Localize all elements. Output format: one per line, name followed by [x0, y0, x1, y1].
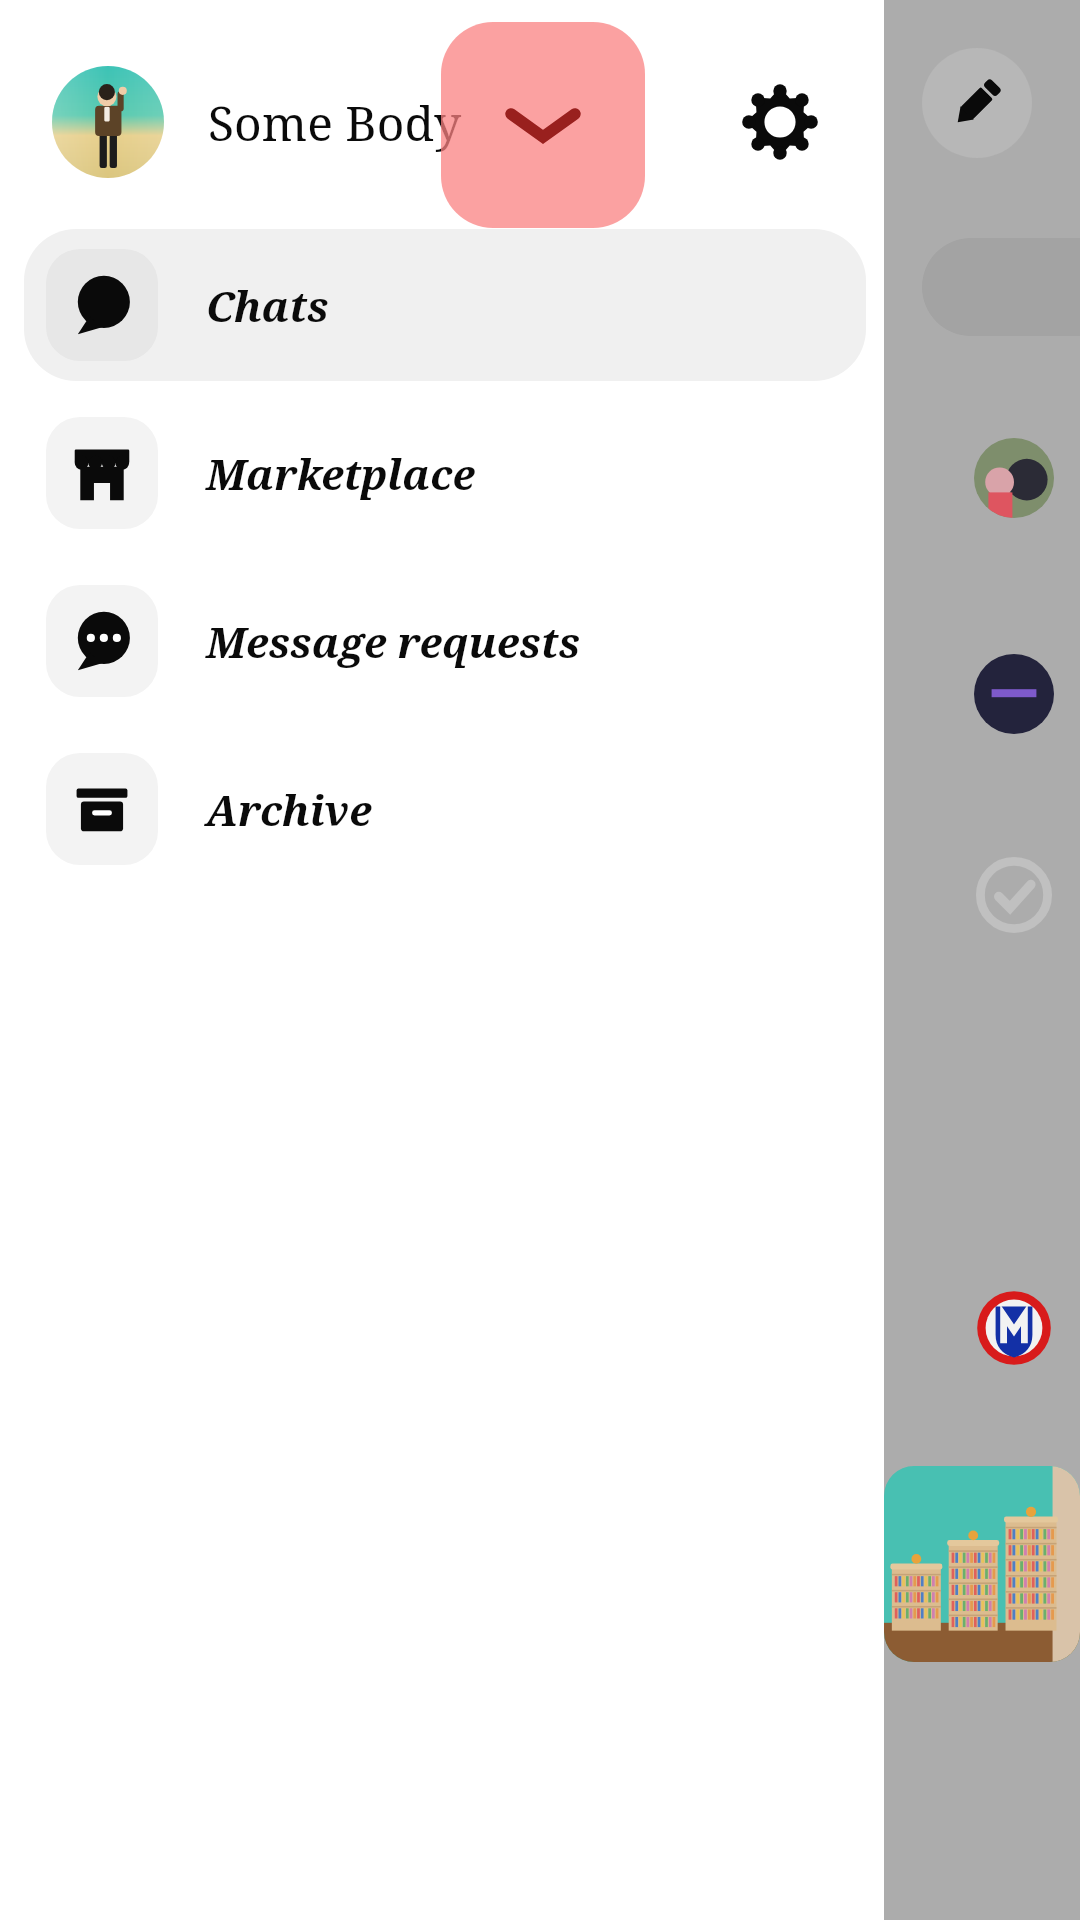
button[interactable]: Conversation avatar [974, 654, 1054, 734]
button[interactable]: Expand account switcher [441, 22, 645, 228]
staticText: Some Body [208, 90, 462, 155]
staticText: Archive [206, 781, 372, 838]
button[interactable]: Settings [742, 84, 818, 160]
staticText: Chats [206, 277, 329, 334]
button[interactable]: Conversation avatar [974, 438, 1054, 518]
button[interactable]: Shared photo [884, 1466, 1080, 1662]
button[interactable]: Contact avatar [974, 1288, 1054, 1368]
button[interactable]: Some Body [208, 62, 638, 182]
button[interactable]: Archive [24, 733, 866, 885]
button[interactable]: Message requests [24, 565, 866, 717]
button[interactable]: Chats [24, 229, 866, 381]
staticText: Marketplace [206, 445, 475, 502]
staticText: Message requests [206, 613, 581, 670]
button[interactable]: Compose new message [922, 48, 1032, 158]
button[interactable]: Marketplace [24, 397, 866, 549]
button[interactable]: Profile picture [52, 66, 164, 178]
button[interactable]: Seen [974, 855, 1054, 935]
